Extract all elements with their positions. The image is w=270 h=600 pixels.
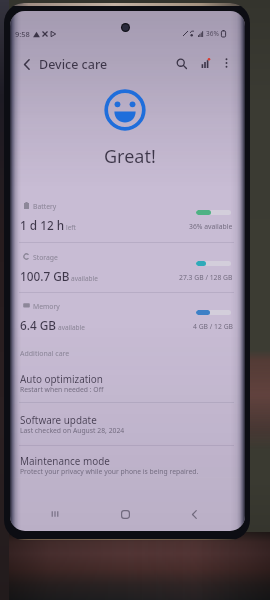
staticText: 9:58	[15, 29, 30, 39]
button[interactable]	[10, 194, 245, 240]
button[interactable]: Back	[183, 503, 205, 525]
staticText: Last checked on August 28, 2024	[20, 426, 125, 435]
button[interactable]	[10, 407, 245, 447]
button[interactable]: More options	[216, 53, 236, 73]
button[interactable]	[10, 245, 245, 291]
staticText: 36%	[206, 29, 219, 38]
staticText: Additional care	[20, 349, 70, 359]
button[interactable]: Home	[114, 503, 136, 525]
button[interactable]: Search	[171, 53, 191, 73]
staticText: left	[66, 223, 76, 232]
button[interactable]	[10, 294, 245, 340]
staticText: Protect your privacy while your phone is…	[20, 467, 199, 476]
staticText: 100.7 GB	[20, 268, 70, 284]
staticText: Software update	[20, 413, 97, 426]
staticText: Auto optimization	[20, 372, 103, 385]
staticText: Battery	[33, 202, 57, 211]
staticText: Memory	[33, 302, 60, 311]
staticText: Restart when needed : Off	[20, 385, 104, 394]
staticText: 1 d 12 h	[20, 217, 65, 233]
staticText: Storage	[33, 253, 58, 262]
staticText: available	[71, 274, 98, 283]
staticText: 36% available	[189, 222, 233, 231]
button[interactable]: Usage statistics	[196, 53, 216, 73]
button[interactable]	[10, 366, 245, 406]
staticText: available	[58, 323, 85, 332]
staticText: 27.3 GB / 128 GB	[179, 273, 233, 282]
button[interactable]	[10, 448, 245, 488]
staticText: Maintenance mode	[20, 454, 110, 467]
button[interactable]: Back	[16, 53, 38, 75]
staticText: 4 GB / 12 GB	[193, 322, 233, 331]
staticText: Great!	[104, 144, 156, 169]
staticText: 6.4 GB	[20, 317, 57, 333]
staticText: Device care	[39, 56, 108, 73]
button[interactable]: Recents	[44, 503, 66, 525]
